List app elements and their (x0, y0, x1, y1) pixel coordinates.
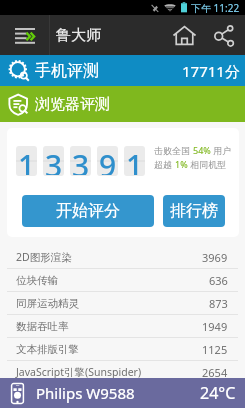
staticText: JavaScript引擎(Sunspider) (16, 365, 142, 379)
staticText: 1 (126, 146, 144, 175)
staticText: 3969 (202, 250, 228, 265)
button[interactable]: JavaScript引擎(Sunspider) (0, 361, 245, 383)
staticText: 1% (175, 158, 188, 170)
staticText: 3 (72, 146, 90, 175)
staticText: 手机评测 (35, 61, 99, 81)
button[interactable]: Share (204, 15, 244, 55)
staticText: 2D图形渲染 (16, 250, 72, 264)
staticText: Philips W9588 (36, 383, 135, 403)
staticText: 1125 (202, 342, 228, 357)
staticText: 1 (18, 146, 36, 175)
button[interactable]: Menu (0, 15, 49, 55)
staticText: 相同机型 (188, 158, 227, 170)
button[interactable]: 文本排版引擎 (0, 338, 245, 360)
button[interactable]: 2D图形渲染 (0, 246, 245, 268)
staticText: 位块传输 (16, 274, 58, 287)
button[interactable]: 手机评测 (0, 55, 245, 86)
staticText: 鲁大师 (56, 26, 101, 45)
staticText: 873 (209, 296, 228, 311)
staticText: 54% (193, 144, 211, 156)
staticText: 同屏运动精灵 (16, 297, 79, 310)
staticText: 文本排版引擎 (16, 343, 79, 356)
staticText: 9 (99, 146, 117, 175)
button[interactable]: 同屏运动精灵 (0, 292, 245, 314)
staticText: 浏览器评测 (35, 95, 110, 114)
staticText: 击败全国 (154, 144, 193, 156)
staticText: 24°C (200, 382, 236, 404)
staticText: 超越 (154, 158, 175, 170)
button[interactable]: Home (164, 15, 204, 55)
staticText: 2654 (202, 365, 228, 380)
staticText: 数据吞吐率 (16, 320, 69, 333)
button[interactable]: 浏览器评测 (0, 86, 245, 122)
staticText: 下午 11:22 (191, 1, 240, 15)
staticText: 3 (45, 146, 63, 175)
staticText: 636 (209, 273, 228, 288)
staticText: 开始评分 (56, 201, 120, 221)
staticText: 排行榜 (170, 201, 218, 221)
button[interactable]: 位块传输 (0, 269, 245, 291)
staticText: 用户 (211, 144, 232, 156)
staticText: 17711分 (182, 61, 240, 81)
button[interactable]: Philips W9588 (0, 378, 245, 408)
button[interactable]: 开始评分 (22, 195, 154, 227)
staticText: 1949 (202, 319, 228, 334)
button[interactable]: 排行榜 (163, 195, 225, 227)
button[interactable]: 数据吞吐率 (0, 315, 245, 337)
